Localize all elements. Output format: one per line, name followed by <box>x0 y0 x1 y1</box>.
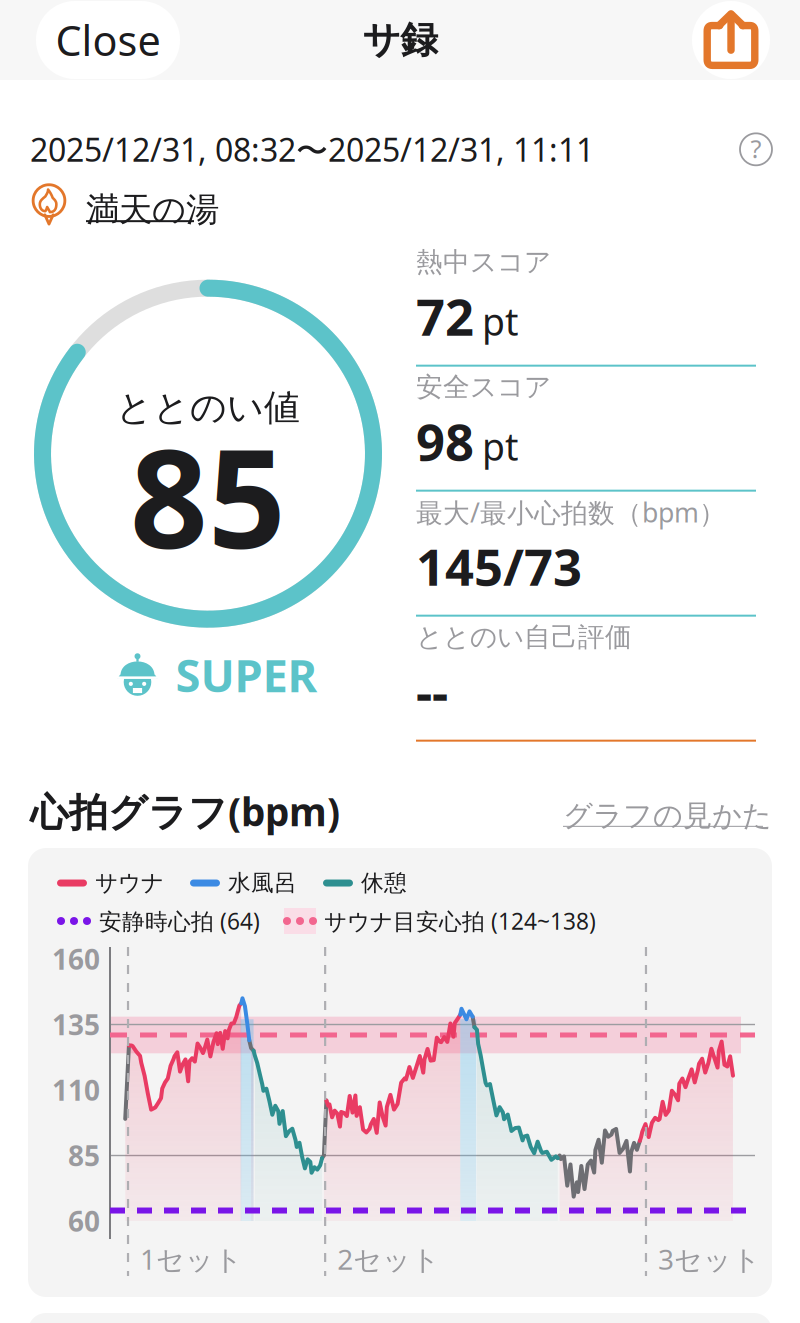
staticText: pt <box>482 421 518 471</box>
staticText: サウナ目安心拍 (124~138) <box>324 906 596 936</box>
button[interactable]: Close <box>36 1 180 79</box>
staticText: 水風呂 <box>228 869 297 897</box>
staticText: 熱中スコア <box>416 246 551 279</box>
staticText: 2025/12/31, 08:32〜2025/12/31, 11:11 <box>30 128 594 171</box>
staticText: pt <box>482 296 518 346</box>
staticText: Close <box>55 13 160 67</box>
staticText: 145/73 <box>416 532 582 600</box>
staticText: サウナ <box>95 869 164 897</box>
staticText: 60 <box>68 1202 100 1240</box>
button[interactable]: グラフの見かた <box>563 796 772 827</box>
staticText: 3セット <box>658 1240 761 1278</box>
staticText: 1セット <box>140 1240 243 1278</box>
staticText: ととのい自己評価 <box>416 621 632 654</box>
staticText: 72 <box>416 282 474 350</box>
staticText: SUPER <box>175 645 317 705</box>
staticText: 135 <box>52 1006 100 1043</box>
staticText: 160 <box>52 940 100 978</box>
staticText: グラフの見かた <box>563 798 772 834</box>
staticText: 85 <box>68 1137 100 1174</box>
staticText: 2セット <box>337 1240 440 1278</box>
staticText: ? <box>750 131 761 165</box>
staticText: 98 <box>416 407 474 475</box>
button[interactable]: Share <box>692 1 770 79</box>
staticText: 休憩 <box>361 869 407 897</box>
staticText: 85 <box>130 405 286 586</box>
staticText: 最大/最小心拍数（bpm） <box>416 494 726 530</box>
button[interactable]: 満天の湯 <box>26 183 219 229</box>
staticText: サ録 <box>362 17 437 63</box>
button[interactable]: Help <box>740 133 772 165</box>
staticText: 110 <box>52 1071 100 1109</box>
staticText: ととのい値 <box>116 386 300 430</box>
staticText: 心拍グラフ(bpm) <box>30 786 340 837</box>
staticText: -- <box>416 657 448 725</box>
staticText: 安静時心拍 (64) <box>99 906 260 936</box>
staticText: 満天の湯 <box>86 189 219 230</box>
staticText: 安全スコア <box>416 371 551 404</box>
